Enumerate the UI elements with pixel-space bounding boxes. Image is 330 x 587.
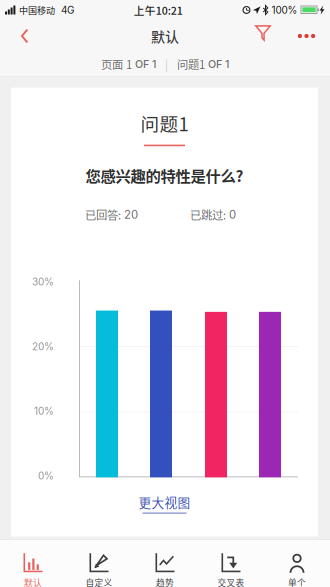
- staticText: 您感兴趣的特性是什么?: [85, 164, 243, 186]
- staticText: 上午10:21: [134, 2, 183, 18]
- staticText: 已回答:: [85, 206, 124, 223]
- button[interactable]: 单个: [264, 540, 330, 587]
- button[interactable]: 默认: [0, 540, 66, 587]
- staticText: 100%: [268, 4, 300, 16]
- staticText: [250, 5, 252, 15]
- staticText: 已跳过:: [190, 206, 229, 223]
- staticText: 10%: [34, 405, 54, 417]
- button[interactable]: 更大视图: [128, 482, 200, 513]
- staticText: 中国移动: [17, 3, 55, 16]
- staticText: 0%: [38, 470, 54, 482]
- staticText: |: [156, 56, 177, 72]
- button[interactable]: 更多: [283, 21, 330, 51]
- staticText: 单个: [288, 576, 306, 587]
- staticText: 更大视图: [138, 493, 190, 511]
- staticText: 20: [124, 208, 138, 221]
- staticText: 交叉表: [217, 576, 244, 587]
- button[interactable]: 返回: [0, 20, 49, 52]
- staticText: 趋势: [156, 576, 174, 587]
- staticText: 问题1: [140, 110, 188, 137]
- staticText: 4G: [55, 4, 74, 16]
- staticText: OF 1: [208, 57, 229, 70]
- staticText: 20%: [32, 340, 54, 353]
- staticText: 0: [229, 208, 236, 221]
- staticText: 默认: [24, 576, 42, 587]
- staticText: 默认: [151, 26, 179, 46]
- staticText: 30%: [32, 276, 54, 288]
- button[interactable]: 筛选: [243, 23, 283, 48]
- button[interactable]: 趋势: [132, 540, 198, 587]
- staticText: 自定义: [85, 576, 112, 587]
- button[interactable]: 交叉表: [198, 540, 264, 587]
- staticText: 问题1: [177, 56, 208, 72]
- staticText: [260, 5, 262, 15]
- staticText: OF 1: [135, 57, 156, 70]
- button[interactable]: 自定义: [66, 540, 132, 587]
- staticText: 页面 1: [101, 56, 135, 72]
